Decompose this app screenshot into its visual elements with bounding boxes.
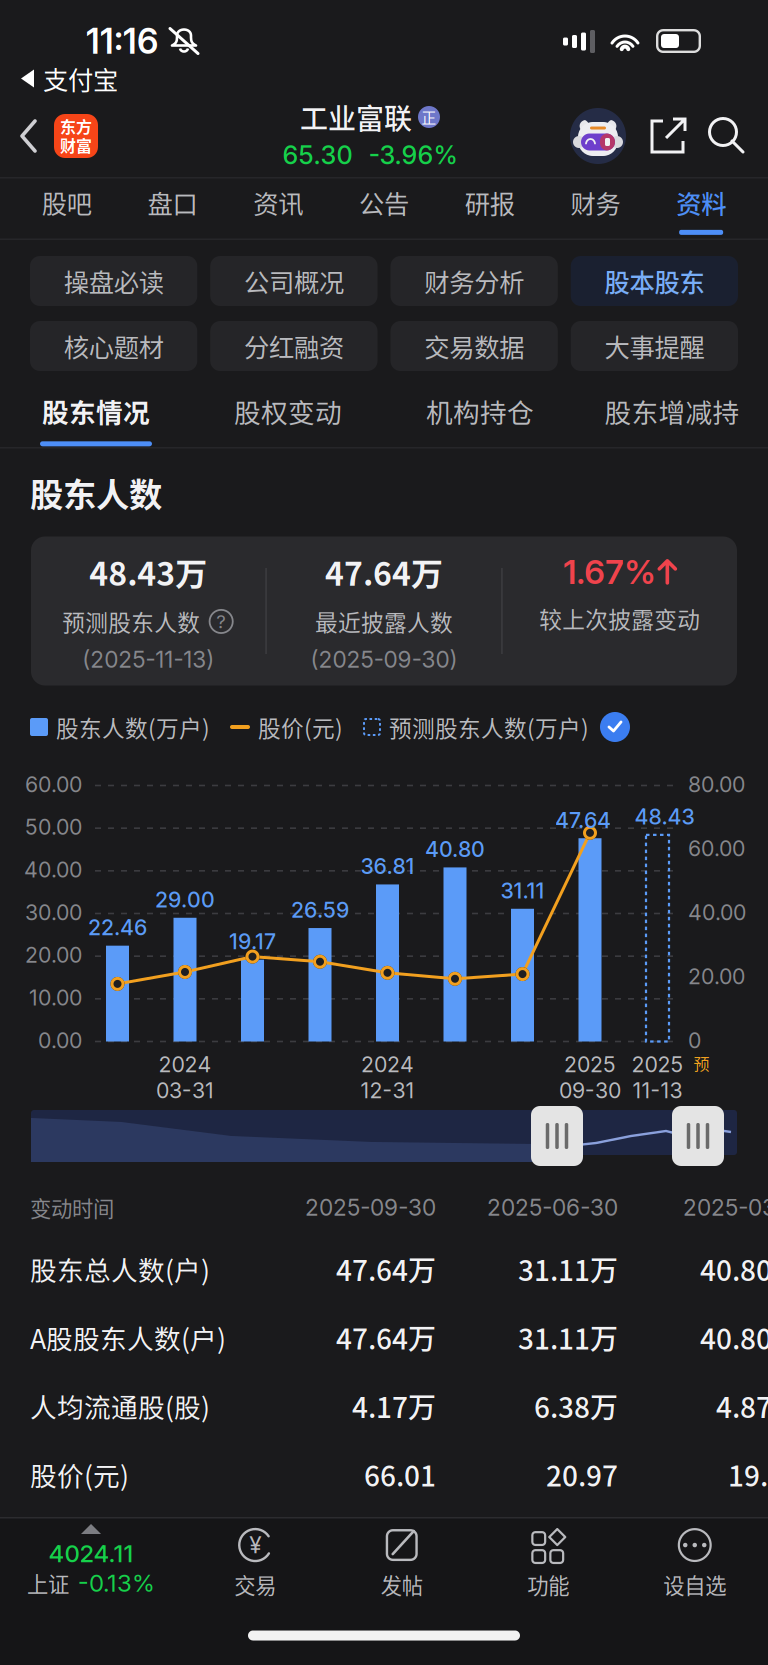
staticText: 1.67%	[563, 552, 655, 592]
staticText: 交易	[234, 1569, 276, 1600]
button[interactable]: Toggle forecast	[599, 711, 631, 743]
staticText: 47.64	[555, 807, 611, 833]
staticText: 较上次披露变动	[539, 602, 700, 635]
staticText: 工业富联	[300, 97, 412, 137]
staticText: 26.59	[291, 897, 349, 923]
staticText: 公告	[359, 184, 409, 221]
staticText: 2024	[158, 1052, 211, 1077]
button[interactable]: Back to 支付宝	[0, 62, 768, 95]
staticText: 股东增减持	[604, 392, 739, 430]
staticText: 大事提醒	[604, 328, 704, 364]
button[interactable]: 发帖	[328, 1517, 475, 1606]
staticText: 47.64万	[336, 1248, 436, 1289]
staticText: 65.30	[282, 140, 352, 170]
staticText: 19.48	[728, 1454, 768, 1494]
staticText: 上证	[27, 1568, 69, 1598]
staticText: 发帖	[381, 1569, 423, 1600]
staticText: 核心题材	[64, 328, 164, 364]
button[interactable]: Share	[626, 115, 706, 157]
staticText: 操盘必读	[64, 263, 164, 299]
staticText: 31.11万	[518, 1317, 618, 1357]
staticText: 财务分析	[424, 263, 524, 299]
staticText: 20.97	[546, 1454, 618, 1494]
staticText: 4.17万	[352, 1385, 436, 1426]
button[interactable]: AI assistant	[570, 108, 626, 164]
staticText: 预测股东人数	[62, 605, 200, 638]
button[interactable]: Search	[706, 115, 768, 157]
button[interactable]: 资讯	[225, 178, 331, 238]
staticText: 财务	[570, 184, 620, 221]
staticText: 20.00	[688, 963, 745, 989]
button[interactable]: 大事提醒	[571, 321, 738, 371]
staticText: 40.80万	[700, 1248, 768, 1289]
button[interactable]: 资料	[648, 178, 754, 238]
staticText: 2025-03-3	[683, 1194, 768, 1221]
staticText: -3.96%	[368, 140, 457, 170]
staticText: 支付宝	[43, 60, 118, 97]
button[interactable]: Back	[0, 95, 54, 177]
staticText: 财富	[60, 133, 92, 157]
staticText: 东方	[60, 114, 92, 138]
staticText: 研报	[465, 184, 515, 221]
staticText: 盘口	[148, 184, 198, 221]
button[interactable]: 财务分析	[390, 256, 558, 306]
staticText: 交易数据	[424, 328, 524, 364]
button[interactable]: 盘口	[120, 178, 225, 238]
button[interactable]: 研报	[437, 178, 543, 238]
staticText: 股吧	[42, 184, 92, 221]
button[interactable]: 设自选	[621, 1517, 768, 1606]
button[interactable]: 核心题材	[30, 321, 197, 371]
button[interactable]: 上证 index 4024.11	[0, 1517, 182, 1606]
staticText: 50.00	[25, 814, 82, 840]
staticText: 60.00	[25, 771, 82, 797]
button[interactable]: 功能	[475, 1517, 621, 1606]
staticText: (2025-11-13)	[82, 646, 214, 673]
staticText: 60.00	[688, 835, 745, 861]
button[interactable]: Range handle	[672, 1106, 724, 1166]
button[interactable]: 分红融资	[210, 321, 377, 371]
staticText: 12-31	[360, 1078, 414, 1103]
button[interactable]: 交易数据	[390, 321, 558, 371]
button[interactable]: 公司概况	[210, 256, 377, 306]
button[interactable]: ¥	[182, 1517, 328, 1606]
staticText: 2025	[631, 1052, 683, 1077]
staticText: 40.80	[425, 836, 485, 862]
staticText: ¥	[249, 1531, 261, 1559]
staticText: 设自选	[663, 1569, 726, 1600]
staticText: 预	[693, 1051, 709, 1075]
staticText: 股东人数(万户)	[56, 711, 210, 743]
staticText: 股东情况	[42, 392, 150, 430]
button[interactable]: 操盘必读	[30, 256, 197, 306]
staticText: 31.11万	[518, 1248, 618, 1289]
staticText: 80.00	[688, 771, 745, 797]
button[interactable]: 机构持仓	[384, 387, 576, 447]
staticText: 6.38万	[534, 1385, 618, 1426]
staticText: 股本股东	[604, 263, 704, 299]
button[interactable]: 股东情况	[0, 387, 192, 447]
button[interactable]: 股本股东	[571, 256, 738, 306]
staticText: 股东人数	[30, 468, 162, 517]
button[interactable]: 股吧	[14, 178, 120, 238]
staticText: 40.00	[688, 899, 746, 925]
staticText: 公司概况	[244, 263, 344, 299]
staticText: -0.13%	[78, 1568, 155, 1597]
staticText: 47.64万	[325, 549, 443, 595]
button[interactable]: 财务	[543, 178, 648, 238]
staticText: (2025-09-30)	[310, 646, 457, 673]
button[interactable]: 股权变动	[192, 387, 384, 447]
staticText: 资讯	[253, 184, 303, 221]
staticText: 2025-06-30	[487, 1194, 618, 1221]
staticText: 29.00	[155, 887, 215, 913]
staticText: 4024.11	[48, 1539, 133, 1568]
button[interactable]: East Money	[54, 114, 98, 158]
staticText: 2024	[361, 1052, 414, 1077]
button[interactable]: Range handle	[531, 1106, 583, 1166]
button[interactable]: 公告	[331, 178, 437, 238]
staticText: 分红融资	[244, 328, 344, 364]
staticText: 变动时间	[30, 1192, 114, 1223]
staticText: 功能	[527, 1569, 569, 1600]
staticText: 36.81	[360, 853, 414, 879]
staticText: 最近披露人数	[315, 605, 453, 638]
button[interactable]: 股东增减持	[576, 387, 768, 447]
